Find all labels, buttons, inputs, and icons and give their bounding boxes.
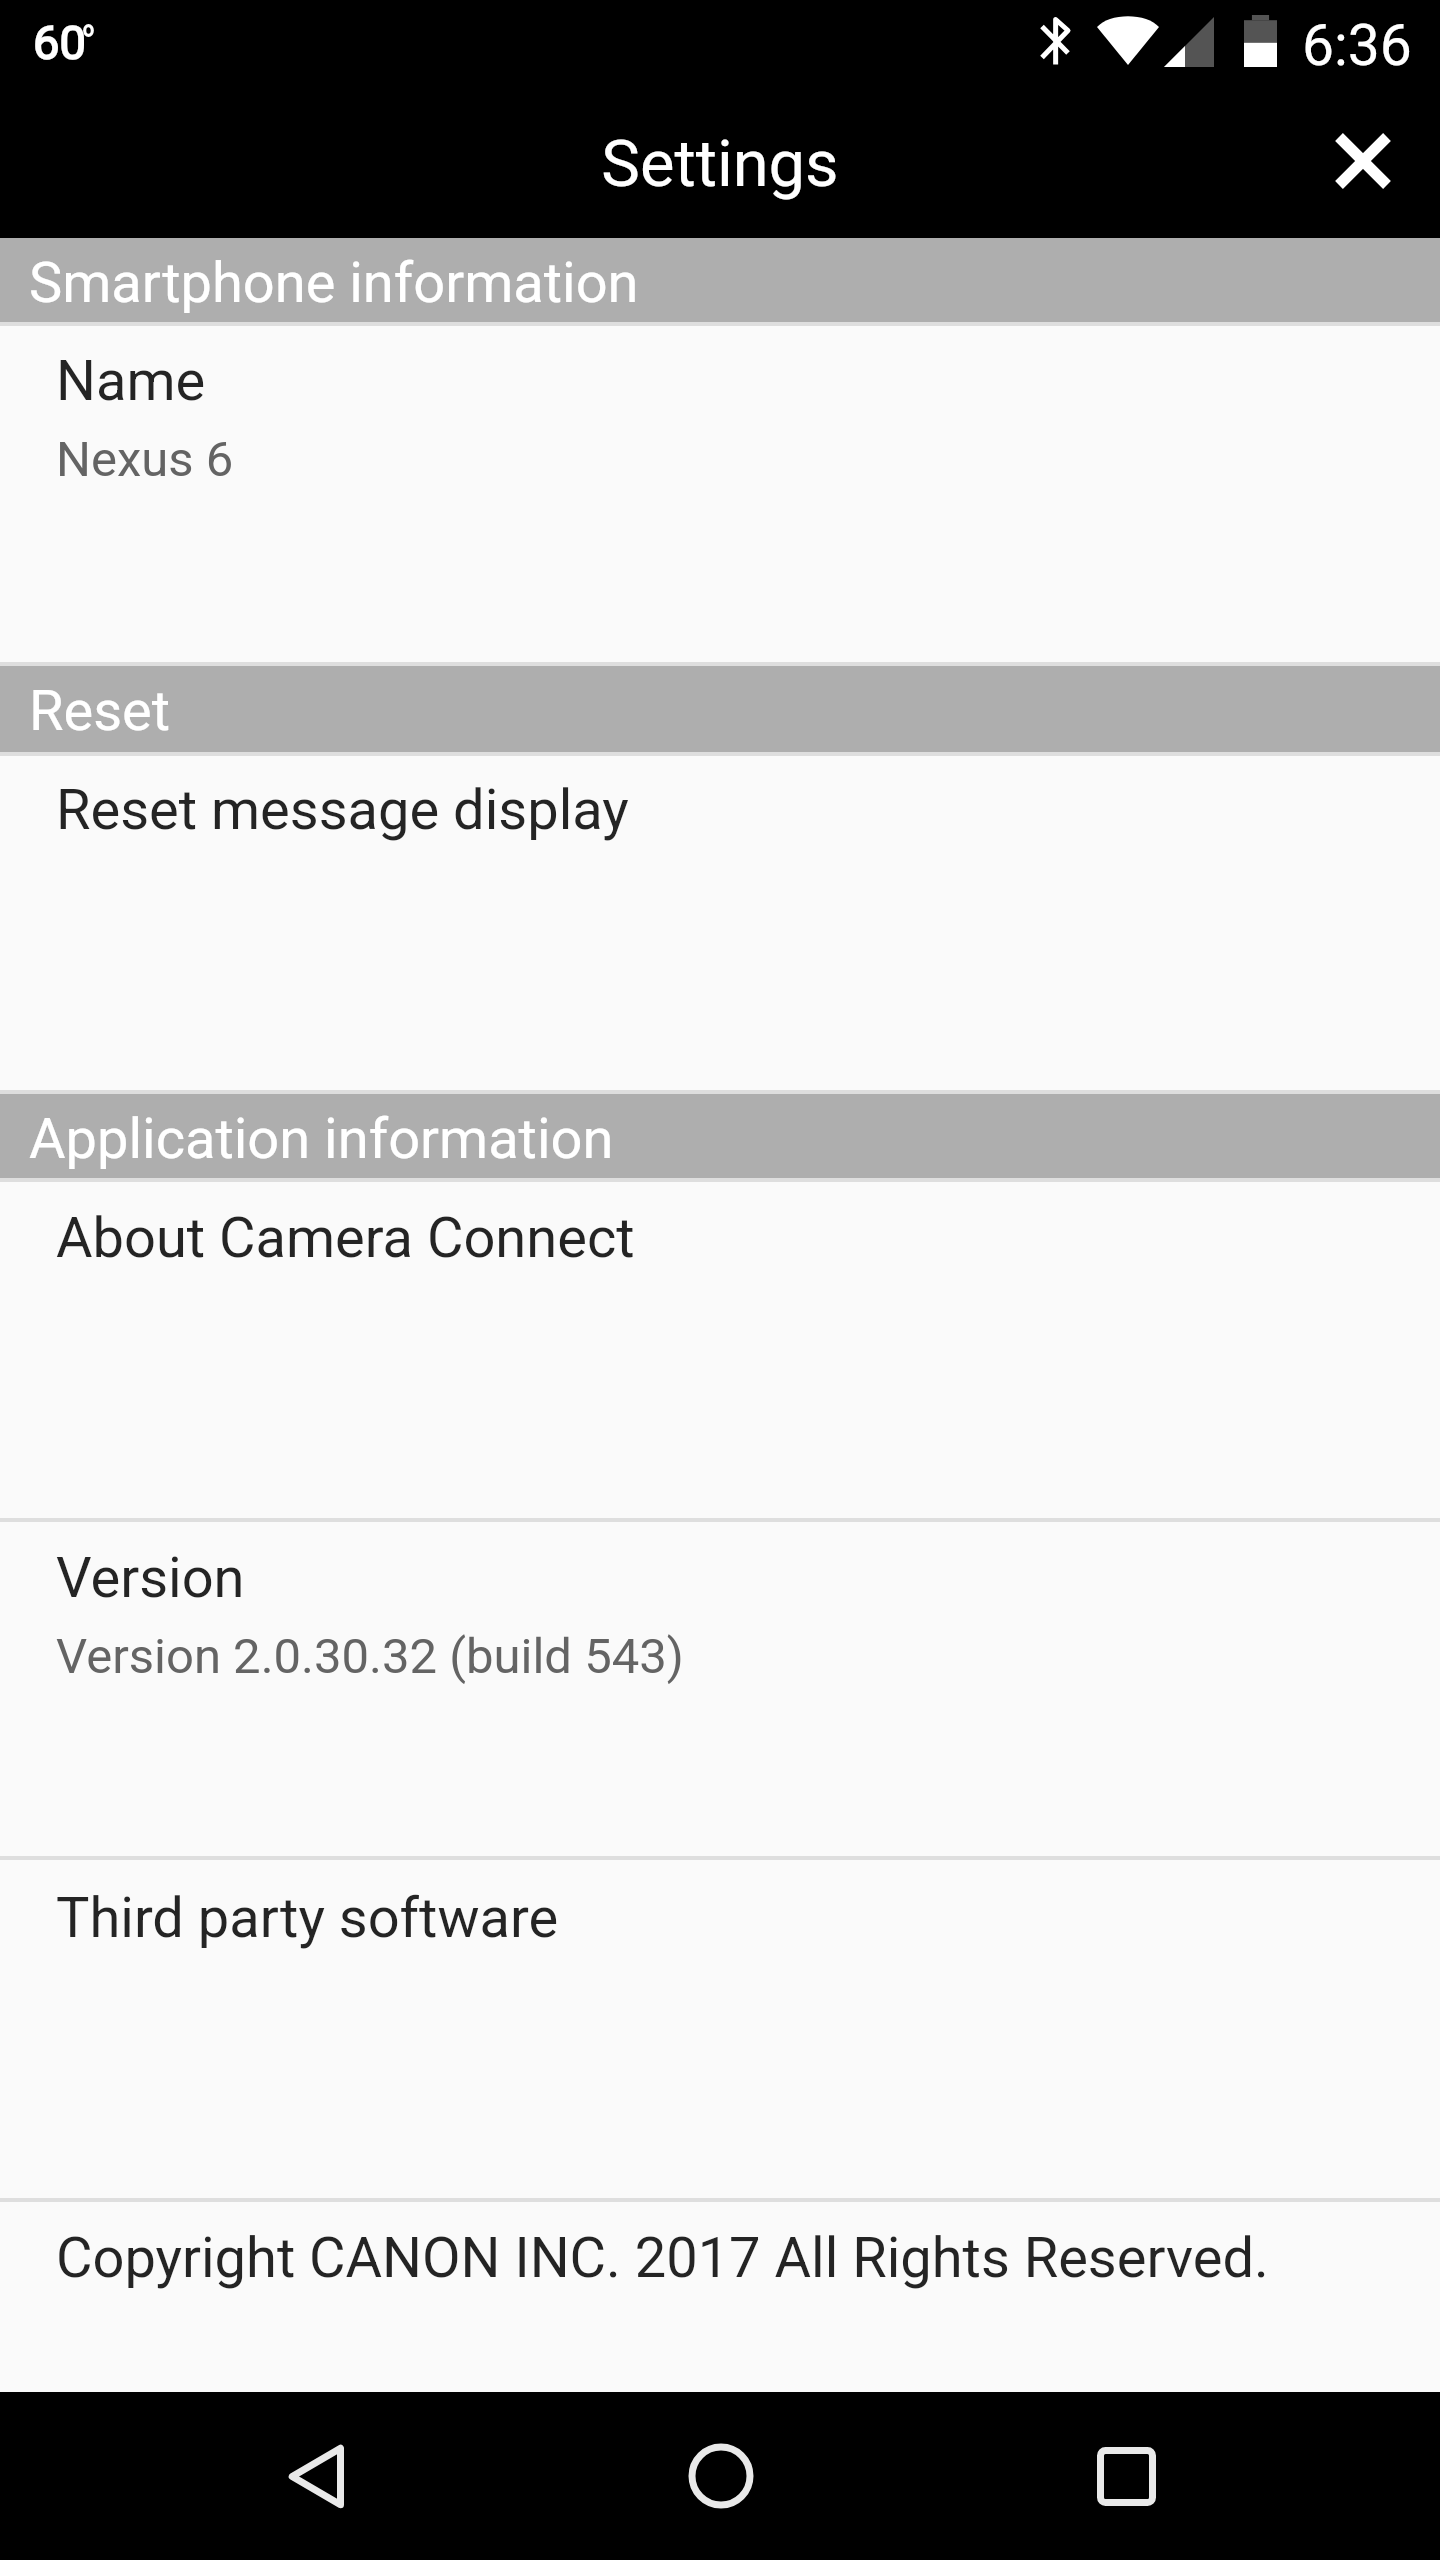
staticText: 60 (33, 15, 86, 70)
button[interactable]: Third party software (0, 1860, 1440, 2198)
staticText: Version (56, 1545, 245, 1611)
button[interactable]: Reset message display (0, 756, 1440, 1090)
staticText: Name (56, 348, 206, 414)
button[interactable]: About Camera Connect (0, 1182, 1440, 1518)
button[interactable]: Home (651, 2406, 791, 2546)
staticText: Reset (29, 678, 171, 744)
button[interactable]: Copyright CANON INC. 2017 All Rights Res… (0, 2202, 1440, 2392)
staticText: Reset message display (56, 777, 629, 843)
staticText: Version 2.0.30.32 (build 543) (56, 1628, 684, 1685)
button[interactable]: Name (0, 326, 1440, 662)
button[interactable]: Recent apps (1056, 2406, 1196, 2546)
staticText: Settings (601, 126, 839, 202)
button[interactable]: Back (246, 2406, 386, 2546)
staticText: Smartphone information (29, 250, 639, 316)
staticText: Nexus 6 (56, 431, 234, 488)
staticText: Copyright CANON INC. 2017 All Rights Res… (56, 2225, 1269, 2291)
staticText: Third party software (56, 1885, 559, 1951)
staticText: 6:36 (1302, 12, 1412, 79)
staticText: Application information (29, 1106, 614, 1172)
staticText: About Camera Connect (56, 1205, 635, 1271)
button[interactable]: Version (0, 1522, 1440, 1856)
button[interactable]: Close (1307, 105, 1419, 217)
